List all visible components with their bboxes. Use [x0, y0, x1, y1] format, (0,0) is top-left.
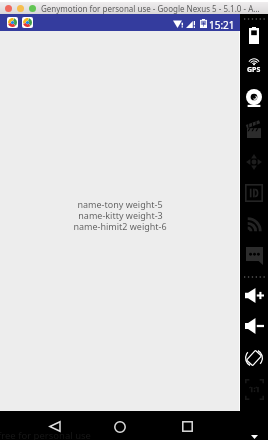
- button[interactable]: Zoom: [29, 5, 36, 12]
- button[interactable]: Virtual sensors: [240, 148, 268, 176]
- button[interactable]: Close: [5, 5, 12, 12]
- button[interactable]: Volume up: [240, 281, 268, 309]
- button[interactable]: GPS: [240, 52, 268, 80]
- staticText: name-tony weight-5: [77, 198, 163, 210]
- button[interactable]: Rotate: [240, 344, 268, 372]
- staticText: name-himit2 weight-6: [73, 220, 167, 232]
- button[interactable]: Video recorder: [240, 115, 268, 143]
- button[interactable]: Battery: [240, 21, 268, 49]
- button[interactable]: Genymotion app: [7, 17, 18, 28]
- button[interactable]: Recents: [165, 411, 209, 440]
- button[interactable]: Identifiers: [240, 179, 268, 207]
- button[interactable]: Scale one to one: [240, 375, 268, 403]
- button[interactable]: Network: [240, 210, 268, 238]
- staticText: GPS: [247, 65, 261, 75]
- staticText: Genymotion for personal use - Google Nex…: [41, 3, 260, 14]
- button[interactable]: Camera: [240, 84, 268, 112]
- staticText: free for personal use: [0, 429, 91, 440]
- staticText: name-kitty weight-3: [78, 209, 163, 221]
- staticText: 15:21: [209, 18, 235, 32]
- button[interactable]: Minimise: [17, 5, 24, 12]
- button[interactable]: Genymotion app: [22, 17, 33, 28]
- button[interactable]: Volume down: [240, 312, 268, 340]
- button[interactable]: SMS: [240, 242, 268, 270]
- button[interactable]: Home: [98, 411, 142, 440]
- button[interactable]: Back: [32, 411, 76, 440]
- button[interactable]: More: [240, 432, 268, 440]
